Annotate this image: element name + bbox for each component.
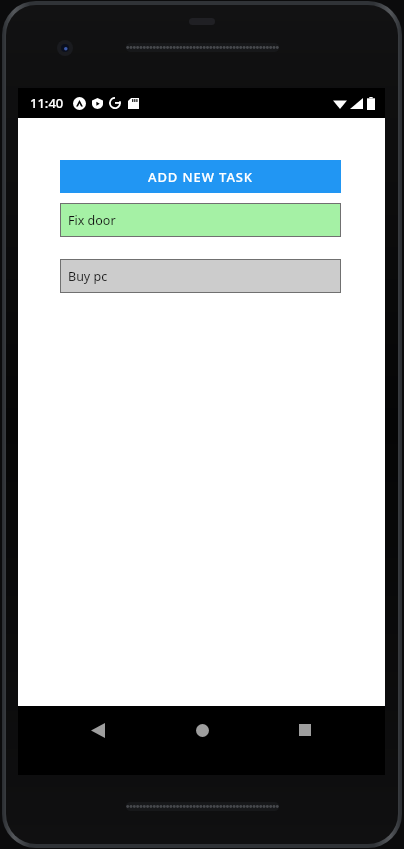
button[interactable]: Fix door	[60, 203, 341, 237]
staticText: Fix door	[68, 212, 116, 229]
button[interactable]: ADD NEW TASK	[60, 160, 341, 193]
button[interactable]: Home	[178, 706, 226, 754]
staticText: ADD NEW TASK	[148, 168, 253, 186]
staticText: Buy pc	[68, 268, 108, 285]
staticText: 11:40	[30, 94, 64, 112]
button[interactable]: Buy pc	[60, 259, 341, 293]
button[interactable]: Back	[74, 706, 122, 754]
button[interactable]: Recent apps	[281, 706, 329, 754]
